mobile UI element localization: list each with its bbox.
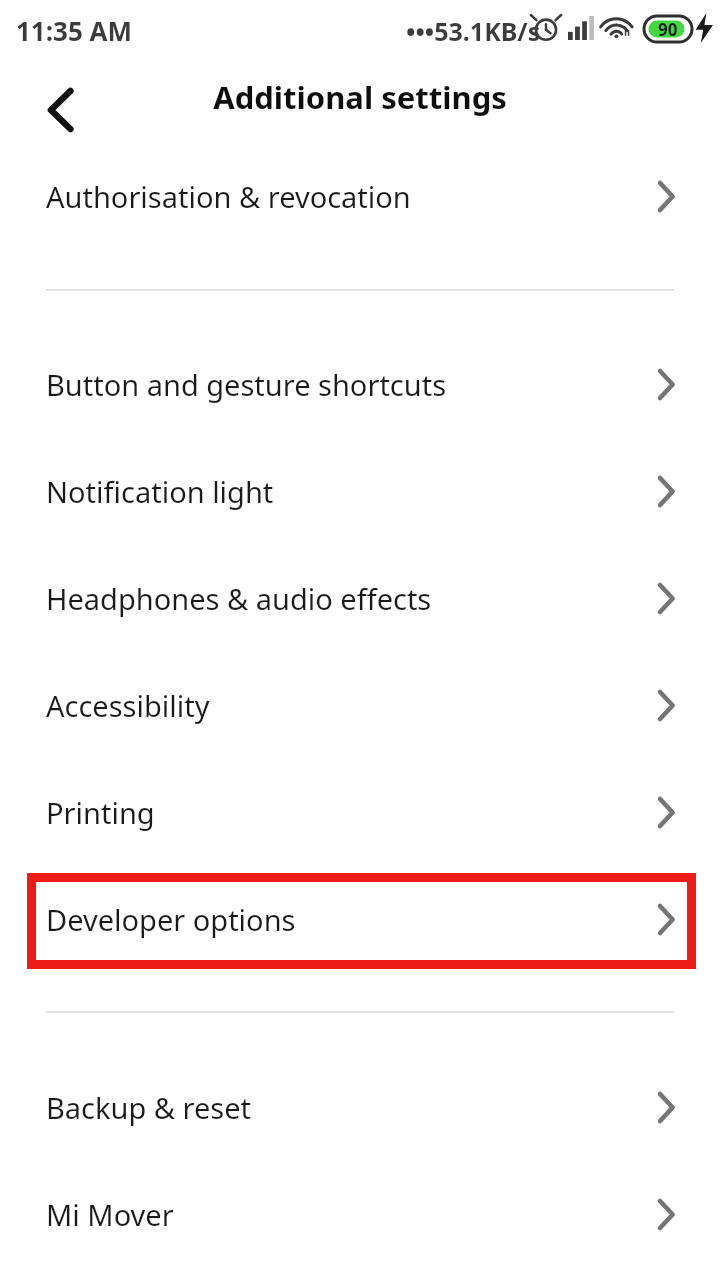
button[interactable]: Accessibility <box>0 659 720 751</box>
button[interactable]: Backup & reset <box>0 1061 720 1153</box>
staticText: Additional settings <box>213 76 507 118</box>
staticText: Developer options <box>46 900 657 939</box>
staticText: Authorisation & revocation <box>46 177 657 216</box>
button[interactable]: Mi Mover <box>0 1168 720 1260</box>
staticText: 11:35 AM <box>16 13 133 48</box>
button[interactable]: Back <box>26 81 98 139</box>
button[interactable]: Developer options <box>0 873 720 965</box>
button[interactable]: Button and gesture shortcuts <box>0 338 720 430</box>
button[interactable]: Printing <box>0 766 720 858</box>
staticText: Notification light <box>46 472 657 511</box>
staticText: Headphones & audio effects <box>46 579 657 618</box>
button[interactable]: Headphones & audio effects <box>0 552 720 644</box>
staticText: Mi Mover <box>46 1195 657 1234</box>
staticText: 90 <box>658 18 678 41</box>
button[interactable]: Notification light <box>0 445 720 537</box>
staticText: Printing <box>46 793 657 832</box>
staticText: Backup & reset <box>46 1088 657 1127</box>
staticText: •••53.1KB/s <box>406 14 541 48</box>
button[interactable]: Authorisation & revocation <box>0 150 720 242</box>
staticText: Accessibility <box>46 686 657 725</box>
staticText: Button and gesture shortcuts <box>46 365 657 404</box>
